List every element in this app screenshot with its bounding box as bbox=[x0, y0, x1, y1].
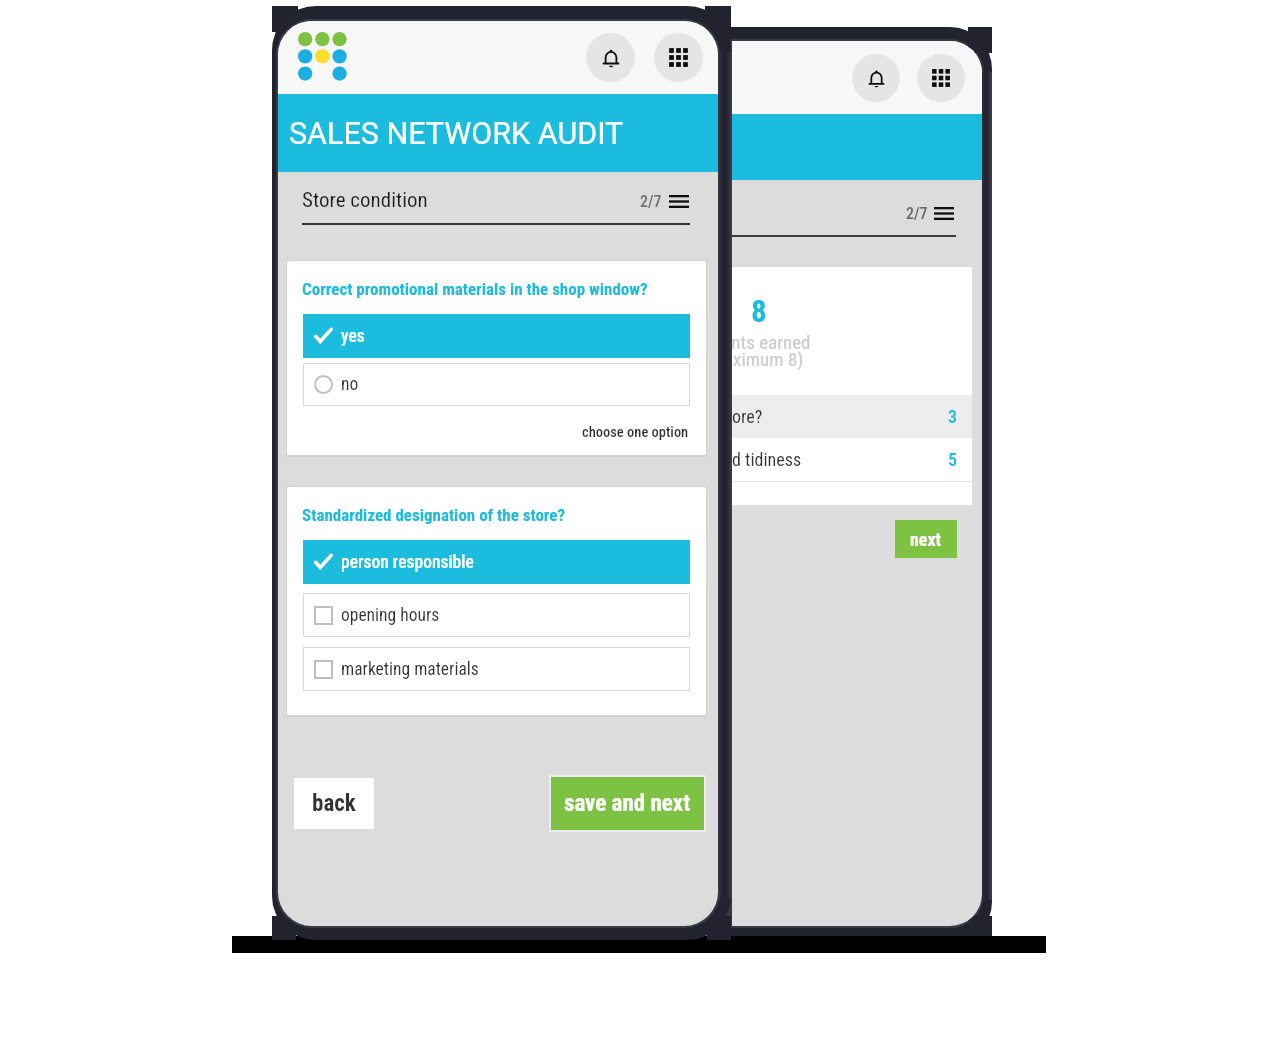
staticText: d tidiness bbox=[732, 449, 802, 470]
button[interactable]: back bbox=[294, 778, 374, 829]
staticText: 3 bbox=[948, 406, 957, 427]
button[interactable]: Notifications bbox=[586, 33, 635, 82]
staticText: 8 bbox=[751, 293, 767, 329]
staticText: ore? bbox=[732, 406, 763, 427]
staticText: aximum 8) bbox=[732, 348, 804, 370]
staticText: 2/7 bbox=[906, 204, 928, 223]
button[interactable]: yes bbox=[303, 314, 690, 358]
button[interactable]: next bbox=[895, 520, 957, 558]
button[interactable]: ore? bbox=[732, 395, 972, 438]
button[interactable]: marketing materials bbox=[303, 647, 690, 691]
staticText: save and next bbox=[564, 790, 691, 817]
staticText: 2/7 bbox=[640, 192, 662, 211]
staticText: opening hours bbox=[341, 605, 440, 626]
staticText: choose one option bbox=[582, 424, 689, 441]
button[interactable]: Apps bbox=[917, 54, 965, 102]
button[interactable]: Notifications bbox=[852, 54, 900, 102]
staticText: no bbox=[341, 374, 359, 395]
staticText: marketing materials bbox=[341, 659, 479, 680]
staticText: yes bbox=[341, 326, 365, 347]
staticText: back bbox=[312, 790, 356, 817]
staticText: 5 bbox=[948, 449, 957, 470]
staticText: Store condition bbox=[302, 188, 428, 213]
button[interactable]: person responsible bbox=[303, 540, 690, 584]
staticText: person responsible bbox=[341, 552, 474, 573]
button[interactable]: no bbox=[303, 363, 690, 406]
staticText: Standardized designation of the store? bbox=[302, 505, 566, 525]
staticText: SALES NETWORK AUDIT bbox=[289, 116, 624, 152]
staticText: next bbox=[910, 529, 942, 550]
button[interactable]: Apps bbox=[654, 33, 703, 82]
button[interactable]: opening hours bbox=[303, 593, 690, 637]
button[interactable]: save and next bbox=[551, 777, 704, 830]
staticText: Correct promotional materials in the sho… bbox=[302, 279, 648, 299]
button[interactable]: d tidiness bbox=[732, 438, 972, 481]
staticText: ints earned bbox=[732, 331, 811, 353]
